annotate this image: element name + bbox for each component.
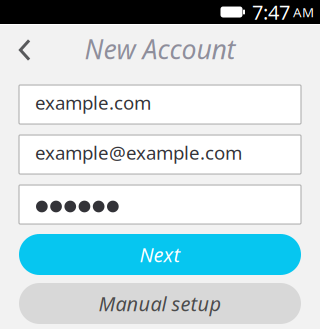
staticText: New Account bbox=[84, 31, 235, 67]
button[interactable]: Back bbox=[0, 28, 42, 70]
staticText: 7:47 bbox=[252, 0, 290, 25]
staticText: example@example.com bbox=[35, 140, 242, 165]
staticText: Manual setup bbox=[98, 290, 221, 317]
button[interactable]: Manual setup bbox=[19, 283, 301, 324]
staticText: example.com bbox=[35, 90, 151, 115]
staticText: Next bbox=[139, 241, 180, 268]
staticText: AM bbox=[293, 3, 314, 21]
button[interactable]: Next bbox=[19, 234, 301, 275]
